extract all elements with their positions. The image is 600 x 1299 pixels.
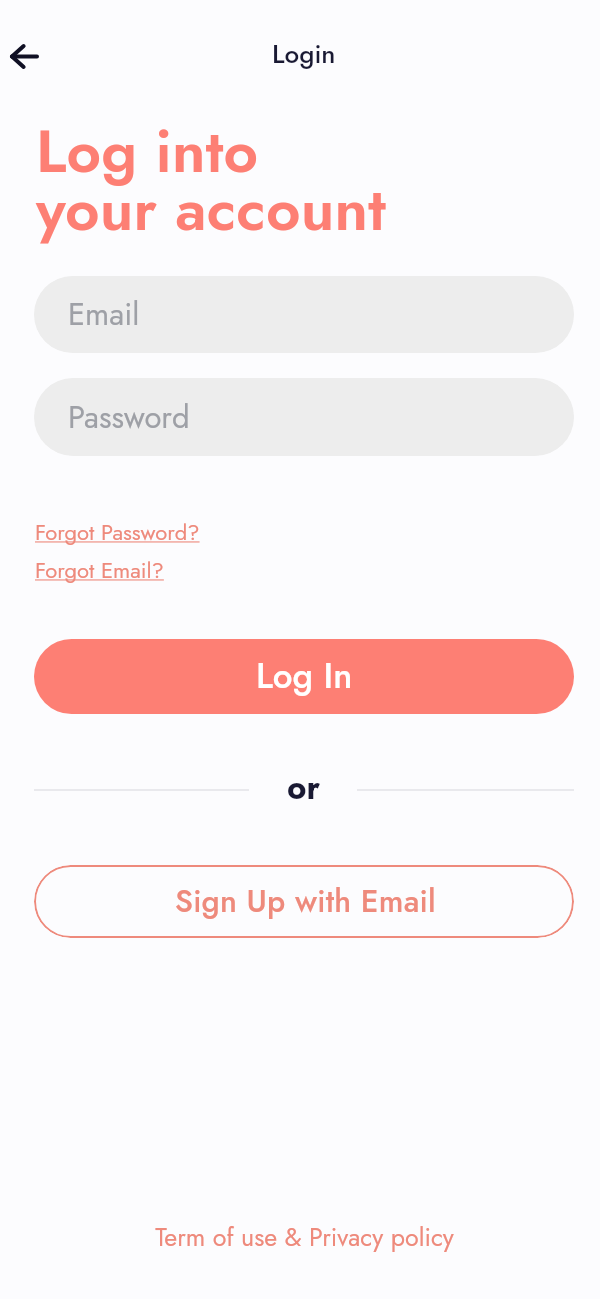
staticText: Sign Up with Email: [175, 879, 436, 924]
button[interactable]: Forgot Email?: [35, 554, 164, 586]
staticText: Log into your account: [36, 108, 386, 252]
button[interactable]: Log In: [34, 639, 574, 714]
staticText: Log In: [256, 651, 353, 702]
staticText: Term of use & Privacy policy: [155, 1219, 454, 1255]
button[interactable]: Forgot Password?: [35, 516, 200, 548]
button[interactable]: Sign Up with Email: [34, 865, 574, 938]
staticText: Email: [68, 292, 140, 337]
button[interactable]: Term of use & Privacy policy: [155, 1219, 454, 1255]
staticText: Forgot Email?: [35, 554, 164, 586]
staticText: or: [287, 764, 321, 812]
button[interactable]: Email: [34, 276, 574, 353]
staticText: Password: [68, 395, 190, 440]
button[interactable]: Back: [0, 24, 56, 88]
staticText: Login: [272, 35, 336, 73]
button[interactable]: Password: [34, 378, 574, 456]
staticText: Forgot Password?: [35, 516, 200, 548]
